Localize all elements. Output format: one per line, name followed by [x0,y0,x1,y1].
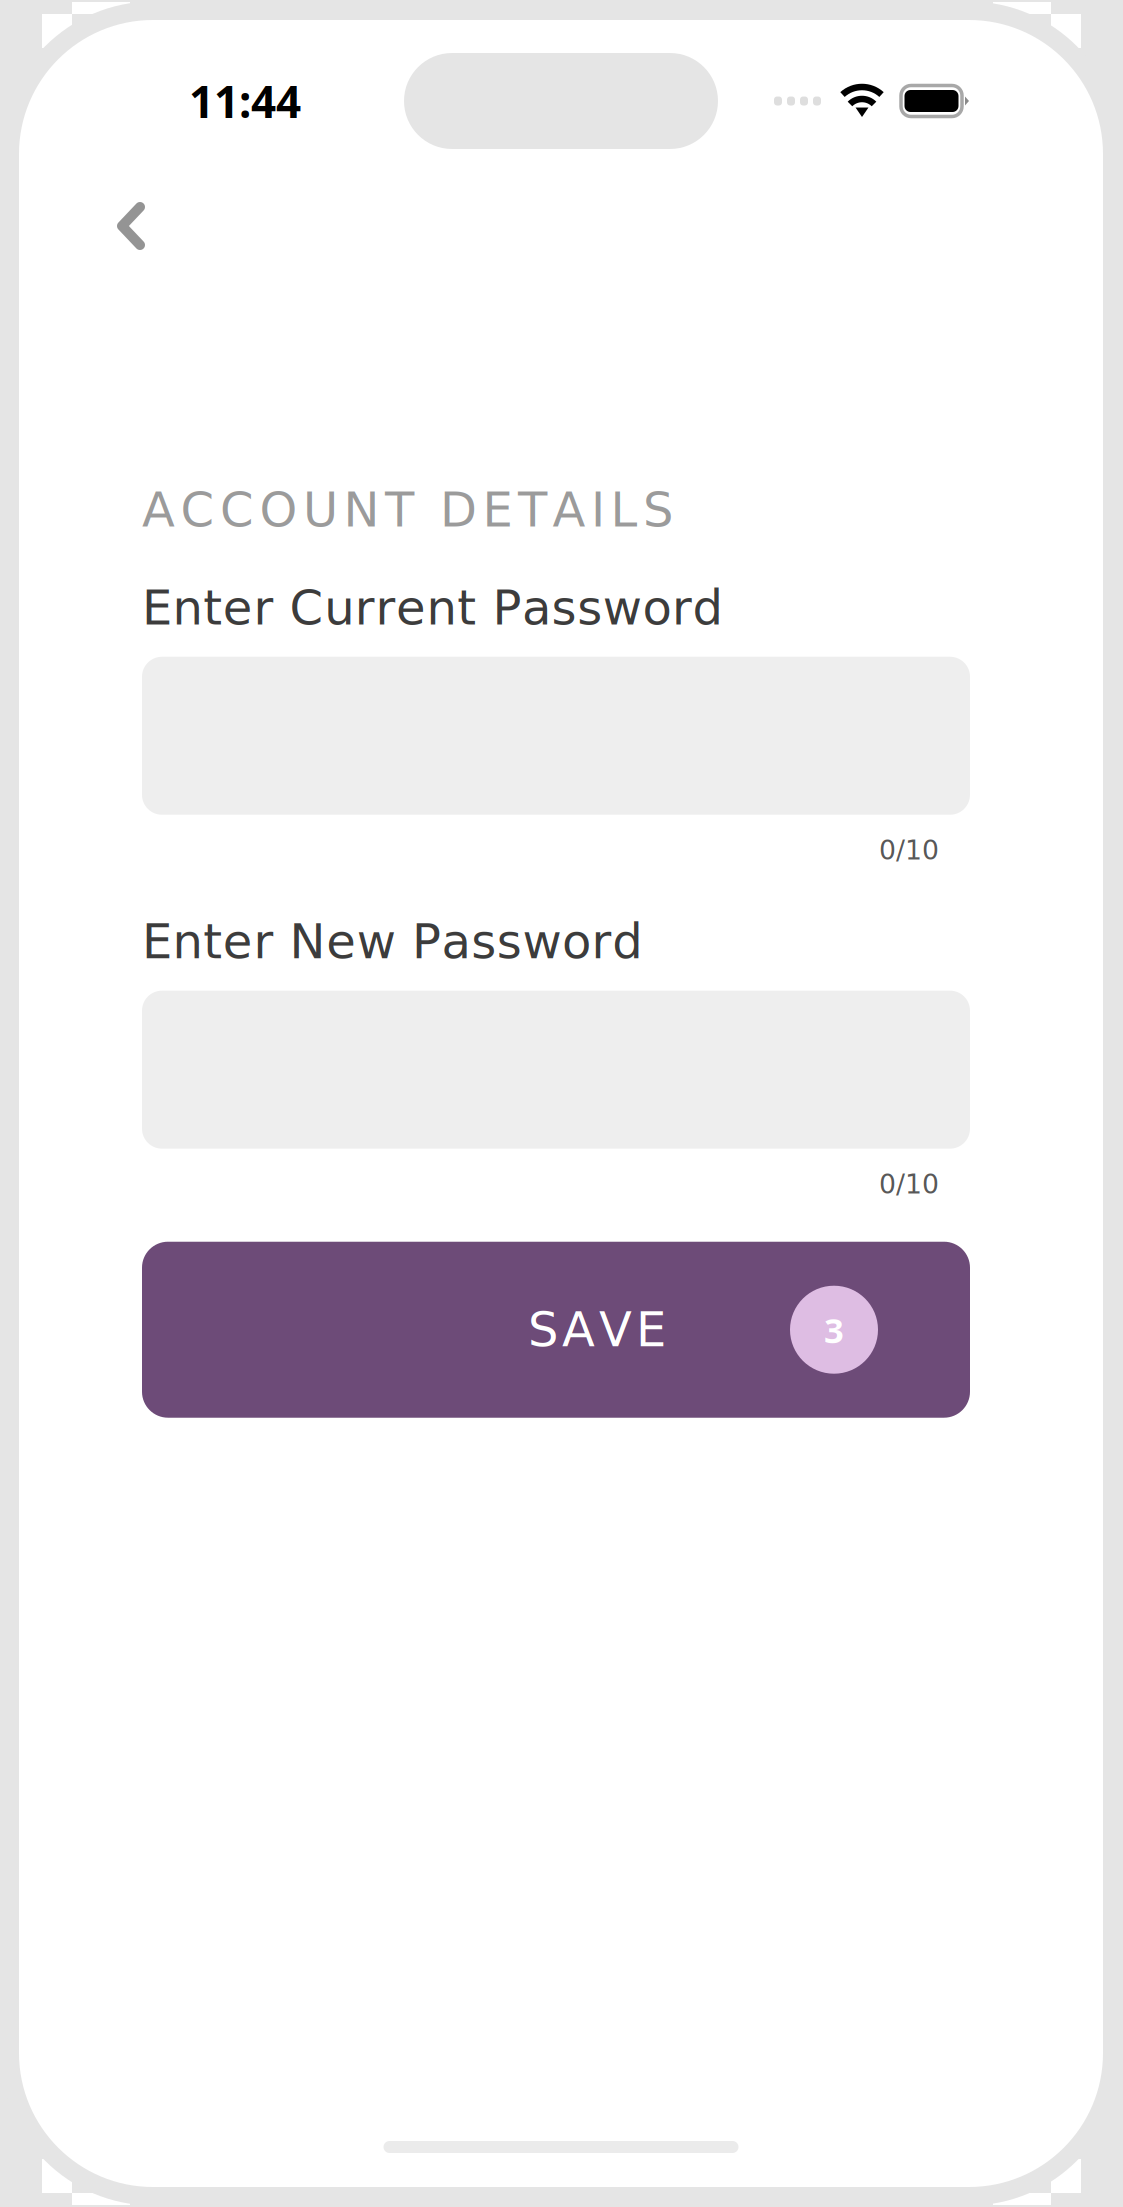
staticText: L [610,482,637,538]
staticText: e [223,914,253,970]
staticText: P [492,580,521,636]
staticText: u [324,580,354,636]
staticText: r [355,580,375,636]
button[interactable]: Back [19,182,173,270]
staticText: o [642,580,671,636]
staticText: U [303,482,338,538]
staticText: t [203,914,222,970]
staticText: D [440,482,477,538]
staticText: 0/10 [879,1169,939,1200]
staticText: r [672,580,692,636]
staticText: r [592,914,612,970]
staticText: S [528,1302,558,1358]
staticText: I [591,482,605,538]
staticText: T [518,482,547,538]
staticText: N [290,914,326,970]
staticText: O [259,482,297,538]
staticText: e [223,580,253,636]
staticText: s [577,580,602,636]
staticText: 0/10 [879,835,939,866]
staticText: V [599,1302,632,1358]
staticText: t [457,580,476,636]
staticText: E [142,580,172,636]
staticText: E [482,482,512,538]
button[interactable]: S [142,1242,970,1418]
staticText: A [562,1302,595,1358]
staticText: t [203,580,222,636]
staticText: s [497,914,522,970]
staticText: d [693,580,723,636]
staticText: S [643,482,673,538]
staticText: n [173,580,203,636]
staticText: A [552,482,585,538]
staticText: E [636,1302,666,1358]
staticText: 3 [824,1306,844,1353]
staticText: C [220,482,254,538]
staticText: r [253,914,273,970]
staticText: w [522,914,561,970]
staticText: e [326,914,356,970]
staticText: w [603,580,642,636]
staticText: w [357,914,396,970]
staticText: C [290,580,324,636]
staticText: e [396,580,426,636]
staticText: N [343,482,379,538]
staticText: o [562,914,591,970]
staticText: a [522,580,551,636]
staticText: n [427,580,457,636]
staticText: s [552,580,577,636]
staticText: d [612,914,642,970]
staticText: 11:44 [189,71,301,131]
staticText: P [412,914,441,970]
staticText: r [253,580,273,636]
staticText: E [142,914,172,970]
staticText: C [180,482,214,538]
staticText: s [471,914,496,970]
staticText: A [142,482,175,538]
staticText: a [442,914,471,970]
staticText: n [173,914,203,970]
staticText: T [385,482,414,538]
staticText: r [375,580,395,636]
